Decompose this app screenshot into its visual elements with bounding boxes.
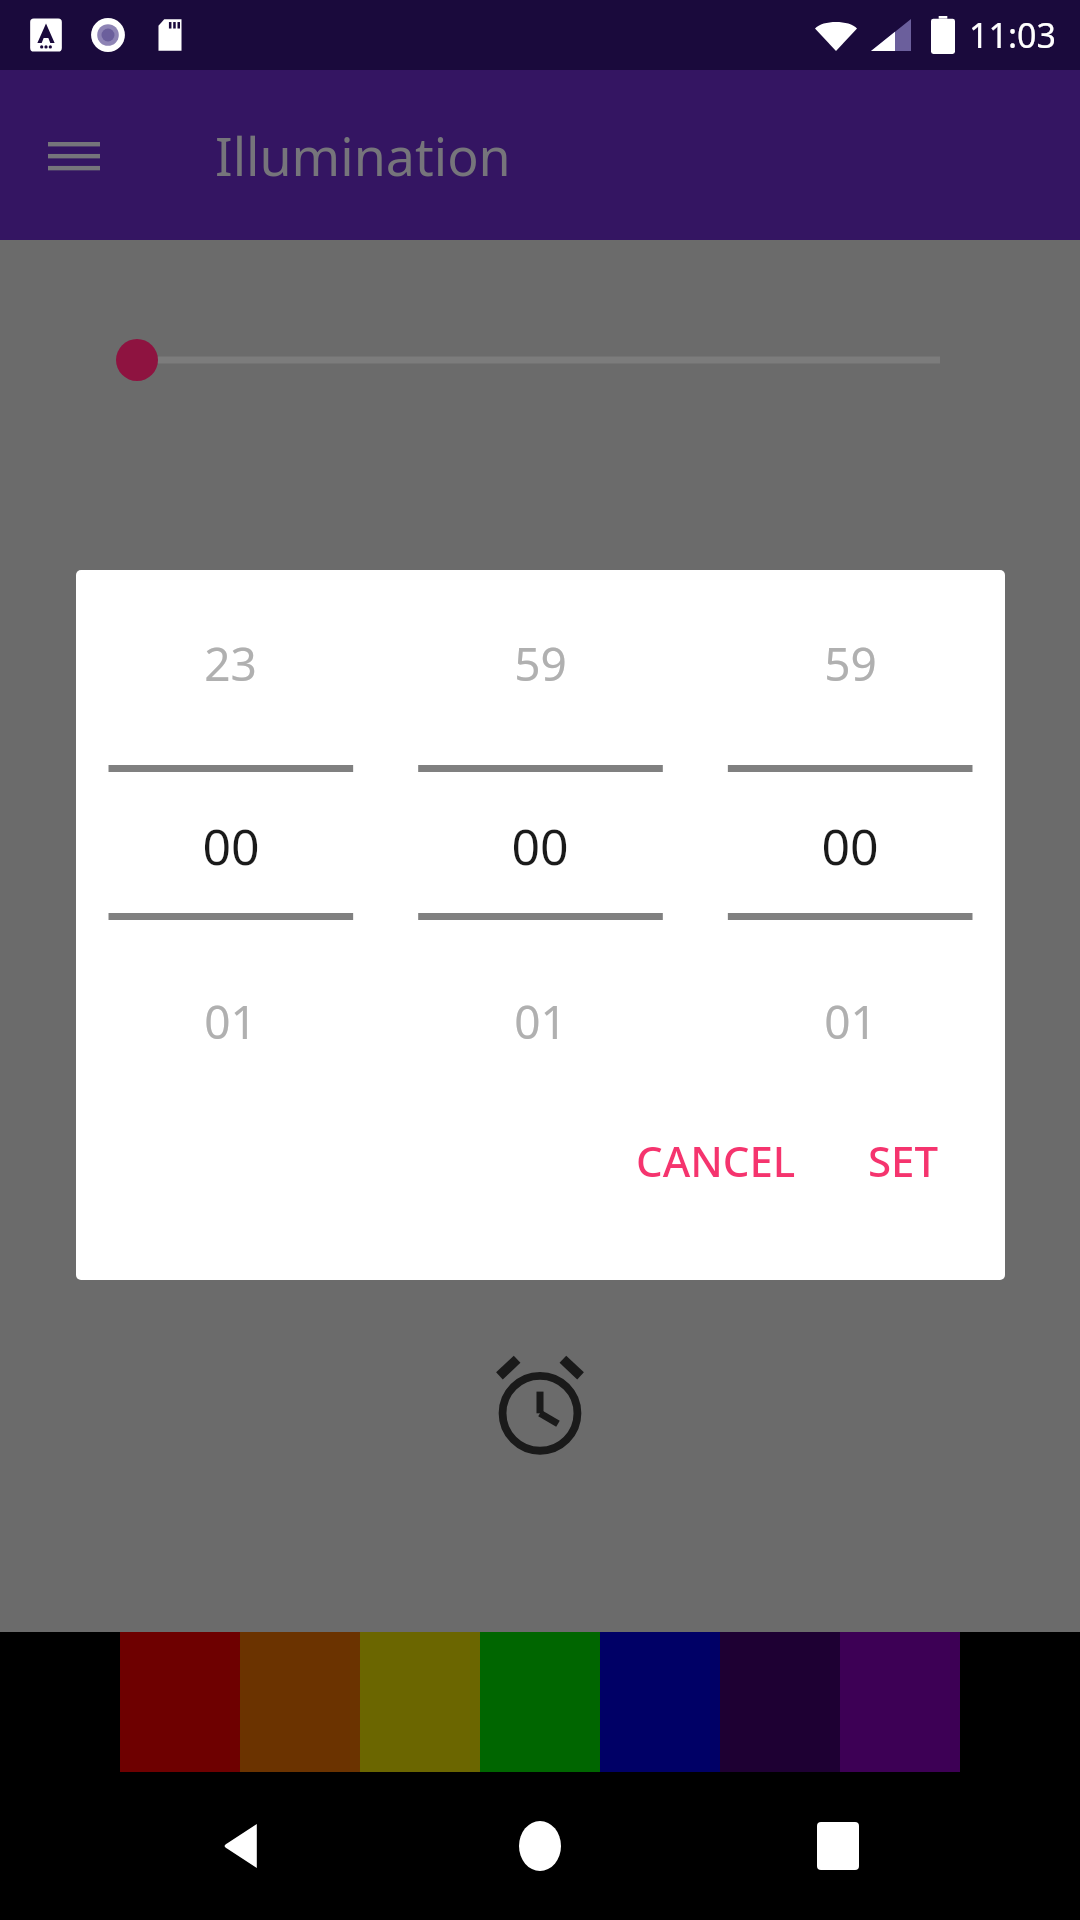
button[interactable]: Open navigation menu — [38, 119, 110, 191]
staticText: 23 — [204, 632, 257, 695]
button[interactable]: 00 — [76, 812, 385, 880]
staticText: 00 — [821, 812, 879, 880]
staticText: CANCEL — [636, 1132, 796, 1189]
button[interactable]: 00 — [695, 812, 1005, 880]
button[interactable]: CANCEL — [616, 1110, 816, 1211]
staticText: 00 — [511, 812, 569, 880]
staticText: 59 — [514, 632, 567, 695]
staticText: 01 — [514, 990, 567, 1053]
button[interactable]: 23 — [76, 632, 385, 695]
staticText: 00 — [202, 812, 260, 880]
button[interactable]: Back — [188, 1791, 298, 1901]
button[interactable]: 00 — [385, 812, 695, 880]
button[interactable]: Set alarm — [480, 1345, 600, 1465]
button[interactable]: 01 — [385, 990, 695, 1053]
button[interactable]: Home — [485, 1791, 595, 1901]
button[interactable]: SET — [848, 1110, 959, 1211]
button[interactable]: 01 — [695, 990, 1005, 1053]
staticText: Illumination — [215, 120, 511, 191]
staticText: 59 — [824, 632, 877, 695]
button[interactable]: 59 — [695, 632, 1005, 695]
staticText: 11:03 — [969, 12, 1056, 58]
button[interactable]: 01 — [76, 990, 385, 1053]
staticText: SET — [868, 1132, 939, 1189]
button[interactable]: Brightness slider — [0, 315, 1080, 405]
staticText: 01 — [824, 990, 877, 1053]
staticText: 01 — [204, 990, 257, 1053]
button[interactable]: Recent apps — [783, 1791, 893, 1901]
button[interactable]: 59 — [385, 632, 695, 695]
